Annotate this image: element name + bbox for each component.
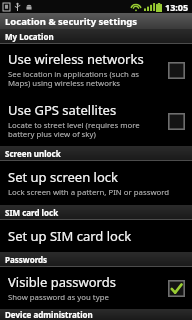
staticText: See location in applications (such as Ma…: [8, 69, 140, 89]
staticText: Set up screen lock: [8, 168, 119, 186]
staticText: 13:05: [165, 1, 189, 13]
staticText: SIM card lock: [5, 207, 59, 218]
staticText: Use GPS satellites: [8, 101, 117, 119]
staticText: Lock screen with a pattern, PIN or passw…: [8, 187, 170, 198]
button[interactable]: Set up SIM card lock: [0, 220, 192, 252]
staticText: Show password as you type: [8, 292, 109, 303]
button[interactable]: Unchecked: [166, 60, 186, 80]
staticText: Location & security settings: [5, 15, 138, 28]
staticText: My Location: [5, 31, 54, 42]
button[interactable]: Unchecked: [166, 111, 186, 131]
staticText: Visible passwords: [8, 273, 116, 291]
staticText: Device administration: [5, 309, 93, 320]
button[interactable]: Use wireless networks: [0, 44, 192, 95]
button[interactable]: Visible passwords: [0, 267, 192, 309]
staticText: Screen unlock: [5, 148, 61, 159]
staticText: Locate to street level (requires more ba…: [8, 120, 140, 140]
staticText: Passwords: [5, 254, 48, 265]
staticText: Set up SIM card lock: [8, 227, 132, 245]
button[interactable]: Use GPS satellites: [0, 95, 192, 146]
staticText: Use wireless networks: [8, 50, 144, 68]
button[interactable]: Set up screen lock: [0, 161, 192, 205]
button[interactable]: Checked: [166, 278, 186, 298]
